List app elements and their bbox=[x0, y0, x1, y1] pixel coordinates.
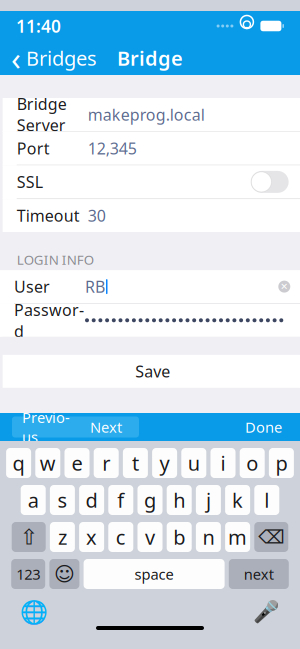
staticText: t bbox=[132, 450, 139, 476]
button[interactable]: m bbox=[225, 522, 250, 552]
staticText: Bridge bbox=[117, 45, 183, 71]
staticText: n bbox=[202, 524, 214, 550]
staticText: Timeout bbox=[17, 205, 80, 226]
staticText: i bbox=[220, 450, 225, 476]
staticText: f bbox=[117, 487, 124, 513]
staticText: h bbox=[173, 487, 185, 513]
staticText: ⌫ bbox=[258, 526, 284, 548]
staticText: 🎤 bbox=[252, 600, 279, 624]
button[interactable]: i bbox=[210, 448, 235, 478]
staticText: LOGIN INFO bbox=[17, 251, 94, 268]
staticText: RB bbox=[85, 276, 105, 297]
staticText: Done bbox=[245, 417, 282, 437]
staticText: z bbox=[58, 524, 67, 550]
button[interactable]: SSL bbox=[251, 171, 289, 193]
staticText: y bbox=[160, 450, 170, 476]
staticText: u bbox=[188, 450, 200, 476]
staticText: g bbox=[144, 487, 156, 513]
button[interactable]: o bbox=[240, 448, 265, 478]
staticText: Previous bbox=[22, 407, 70, 446]
staticText: 123 bbox=[16, 564, 40, 584]
staticText: 12,345 bbox=[88, 138, 137, 159]
staticText: m bbox=[228, 524, 247, 550]
button[interactable]: f bbox=[108, 485, 133, 515]
staticText: User bbox=[14, 276, 50, 297]
staticText: x bbox=[86, 524, 97, 550]
staticText: r bbox=[102, 450, 110, 476]
button[interactable]: v bbox=[137, 522, 162, 552]
button[interactable]: d bbox=[79, 485, 104, 515]
staticText: Password bbox=[14, 299, 84, 342]
button[interactable]: ‹ bbox=[0, 41, 108, 75]
button[interactable]: Delete bbox=[254, 522, 288, 552]
button[interactable]: Previous bbox=[12, 416, 80, 437]
staticText: 30 bbox=[88, 205, 106, 226]
staticText: j bbox=[206, 487, 211, 513]
button[interactable]: y bbox=[152, 448, 177, 478]
button[interactable]: k bbox=[225, 485, 250, 515]
button[interactable]: Next bbox=[80, 416, 132, 437]
staticText: ☺ bbox=[54, 563, 75, 585]
button[interactable]: g bbox=[137, 485, 162, 515]
button[interactable]: z bbox=[50, 522, 75, 552]
staticText: w bbox=[40, 450, 56, 476]
staticText: k bbox=[232, 487, 243, 513]
button[interactable]: next bbox=[229, 559, 289, 589]
staticText: e bbox=[71, 450, 82, 476]
button[interactable]: s bbox=[50, 485, 75, 515]
button[interactable]: a bbox=[21, 485, 46, 515]
button[interactable]: Emoji bbox=[49, 559, 79, 589]
staticText: makeprog.local bbox=[88, 104, 205, 125]
staticText: ‹ bbox=[11, 37, 21, 79]
staticText: p bbox=[275, 450, 287, 476]
staticText: Next bbox=[90, 417, 122, 437]
button[interactable]: Dictation bbox=[246, 598, 286, 626]
button[interactable]: x bbox=[79, 522, 104, 552]
staticText: d bbox=[86, 487, 98, 513]
staticText: space bbox=[135, 564, 174, 584]
button[interactable]: 123 bbox=[11, 559, 45, 589]
staticText: Save bbox=[135, 361, 170, 382]
staticText: Bridge Server bbox=[17, 93, 67, 136]
staticText: q bbox=[13, 450, 25, 476]
button[interactable]: Next keyboard bbox=[14, 598, 54, 626]
button[interactable]: space bbox=[84, 559, 225, 589]
button[interactable]: q bbox=[6, 448, 31, 478]
staticText: l bbox=[264, 487, 269, 513]
button[interactable]: u bbox=[181, 448, 206, 478]
staticText: 🌐 bbox=[20, 599, 48, 625]
button[interactable]: h bbox=[167, 485, 192, 515]
staticText: ⇧ bbox=[20, 525, 38, 549]
button[interactable]: j bbox=[196, 485, 221, 515]
staticText: next bbox=[244, 564, 274, 584]
staticText: b bbox=[173, 524, 185, 550]
staticText: Bridges bbox=[26, 45, 97, 71]
button[interactable]: w bbox=[35, 448, 60, 478]
button[interactable]: e bbox=[64, 448, 89, 478]
button[interactable]: r bbox=[94, 448, 119, 478]
button[interactable]: b bbox=[167, 522, 192, 552]
button[interactable]: t bbox=[123, 448, 148, 478]
staticText: Port bbox=[17, 138, 50, 159]
staticText: o bbox=[246, 450, 258, 476]
button[interactable]: Shift bbox=[12, 522, 46, 552]
staticText: s bbox=[57, 487, 67, 513]
button[interactable]: Save bbox=[3, 355, 300, 388]
button[interactable]: l bbox=[254, 485, 279, 515]
staticText: v bbox=[145, 524, 155, 550]
button[interactable]: Clear text bbox=[277, 280, 291, 294]
staticText: ✕ bbox=[280, 281, 288, 292]
button[interactable]: n bbox=[196, 522, 221, 552]
staticText: a bbox=[28, 487, 39, 513]
button[interactable]: Done bbox=[239, 416, 288, 437]
staticText: c bbox=[116, 524, 126, 550]
staticText: SSL bbox=[17, 171, 43, 192]
staticText: 11:40 bbox=[16, 14, 61, 37]
button[interactable]: p bbox=[269, 448, 294, 478]
button[interactable]: c bbox=[108, 522, 133, 552]
